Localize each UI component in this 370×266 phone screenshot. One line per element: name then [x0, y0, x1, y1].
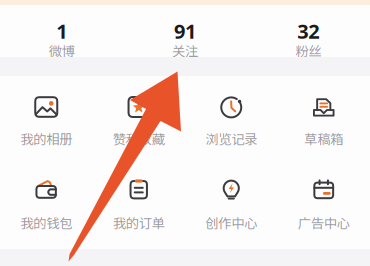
staticText: 我的钱包 — [20, 213, 72, 232]
staticText: 1 — [56, 18, 67, 44]
button[interactable]: 1 — [0, 18, 123, 44]
staticText: 91 — [174, 18, 196, 44]
staticText: 32 — [297, 18, 319, 44]
button[interactable]: 91 — [123, 18, 247, 44]
button[interactable]: 32 — [247, 18, 370, 44]
staticText: 创作中心 — [205, 213, 257, 232]
staticText: 赞和收藏 — [113, 129, 165, 148]
staticText: 微博 — [49, 41, 75, 60]
staticText: 我的订单 — [113, 213, 165, 232]
staticText: 草稿箱 — [304, 129, 343, 148]
staticText: 粉丝 — [295, 41, 321, 60]
staticText: 广告中心 — [298, 213, 350, 232]
staticText: 关注 — [172, 41, 198, 60]
staticText: 浏览记录 — [205, 129, 257, 148]
staticText: 我的相册 — [20, 129, 72, 148]
